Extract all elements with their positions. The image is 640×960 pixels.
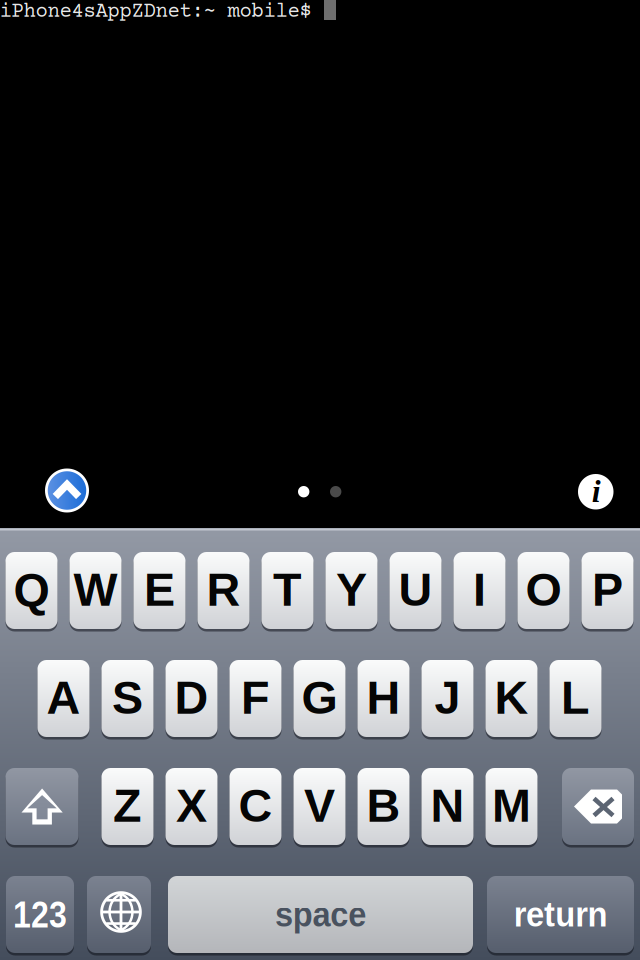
- staticText: S: [112, 671, 143, 723]
- button[interactable]: I: [453, 552, 505, 629]
- button[interactable]: Y: [325, 552, 377, 629]
- button[interactable]: Q: [5, 552, 57, 629]
- button[interactable]: X: [165, 768, 217, 845]
- button[interactable]: H: [357, 660, 409, 737]
- staticText: 123: [8, 894, 71, 935]
- button[interactable]: U: [389, 552, 441, 629]
- button[interactable]: return: [487, 876, 634, 953]
- staticText: space: [272, 895, 369, 934]
- staticText: A: [46, 671, 80, 723]
- button[interactable]: N: [421, 768, 473, 845]
- staticText: Q: [13, 563, 49, 615]
- button[interactable]: V: [293, 768, 345, 845]
- staticText: U: [398, 563, 432, 615]
- staticText: F: [241, 671, 270, 723]
- button[interactable]: T: [261, 552, 313, 629]
- staticText: J: [434, 671, 460, 723]
- button[interactable]: G: [293, 660, 345, 737]
- staticText: i: [592, 473, 601, 509]
- button[interactable]: P: [581, 552, 633, 629]
- staticText: X: [176, 779, 207, 831]
- button[interactable]: E: [133, 552, 185, 629]
- button[interactable]: R: [197, 552, 249, 629]
- staticText: C: [238, 779, 272, 831]
- staticText: N: [430, 779, 464, 831]
- button[interactable]: Numbers: [6, 876, 74, 953]
- staticText: Z: [113, 779, 142, 831]
- staticText: O: [525, 563, 561, 615]
- button[interactable]: Delete: [562, 768, 634, 845]
- button[interactable]: D: [165, 660, 217, 737]
- staticText: H: [366, 671, 400, 723]
- button[interactable]: Shift: [5, 768, 78, 845]
- button[interactable]: O: [517, 552, 569, 629]
- staticText: iPhone4sAppZDnet:~ mobile$: [0, 0, 312, 24]
- button[interactable]: J: [421, 660, 473, 737]
- button[interactable]: F: [229, 660, 281, 737]
- staticText: D: [174, 671, 208, 723]
- button[interactable]: Menu: [45, 468, 89, 512]
- staticText: R: [206, 563, 240, 615]
- button[interactable]: Info: [578, 474, 613, 509]
- staticText: E: [144, 563, 175, 615]
- button[interactable]: L: [549, 660, 601, 737]
- staticText: K: [494, 671, 528, 723]
- button[interactable]: B: [357, 768, 409, 845]
- button[interactable]: K: [485, 660, 537, 737]
- staticText: M: [492, 779, 531, 831]
- button[interactable]: A: [37, 660, 89, 737]
- staticText: V: [304, 779, 335, 831]
- staticText: Y: [336, 563, 367, 615]
- button[interactable]: S: [101, 660, 153, 737]
- button[interactable]: M: [485, 768, 537, 845]
- staticText: G: [301, 671, 337, 723]
- staticText: W: [73, 563, 117, 615]
- button[interactable]: Next keyboard: [87, 876, 151, 953]
- staticText: P: [592, 563, 623, 615]
- staticText: L: [561, 671, 590, 723]
- staticText: T: [273, 563, 302, 615]
- button[interactable]: C: [229, 768, 281, 845]
- button[interactable]: Z: [101, 768, 153, 845]
- button[interactable]: space: [168, 876, 473, 953]
- staticText: I: [473, 563, 486, 615]
- button[interactable]: W: [69, 552, 121, 629]
- staticText: return: [511, 895, 610, 934]
- staticText: B: [366, 779, 400, 831]
